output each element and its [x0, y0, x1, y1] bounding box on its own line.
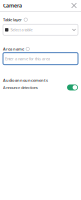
- button[interactable]: Toggle audio announcements: [67, 84, 78, 90]
- staticText: Enter a name for this area: [5, 56, 50, 61]
- staticText: Table layer: [3, 17, 22, 22]
- staticText: Camera: [3, 2, 22, 9]
- staticText: Area name: [3, 46, 24, 52]
- button[interactable]: Close: [70, 1, 78, 9]
- button[interactable]: Select a table: [3, 24, 78, 35]
- staticText: Audio announcements: [3, 78, 48, 83]
- staticText: Select a table: [10, 27, 32, 32]
- button[interactable]: Enter a name for this area: [3, 53, 78, 65]
- staticText: Announce detections: [3, 85, 38, 90]
